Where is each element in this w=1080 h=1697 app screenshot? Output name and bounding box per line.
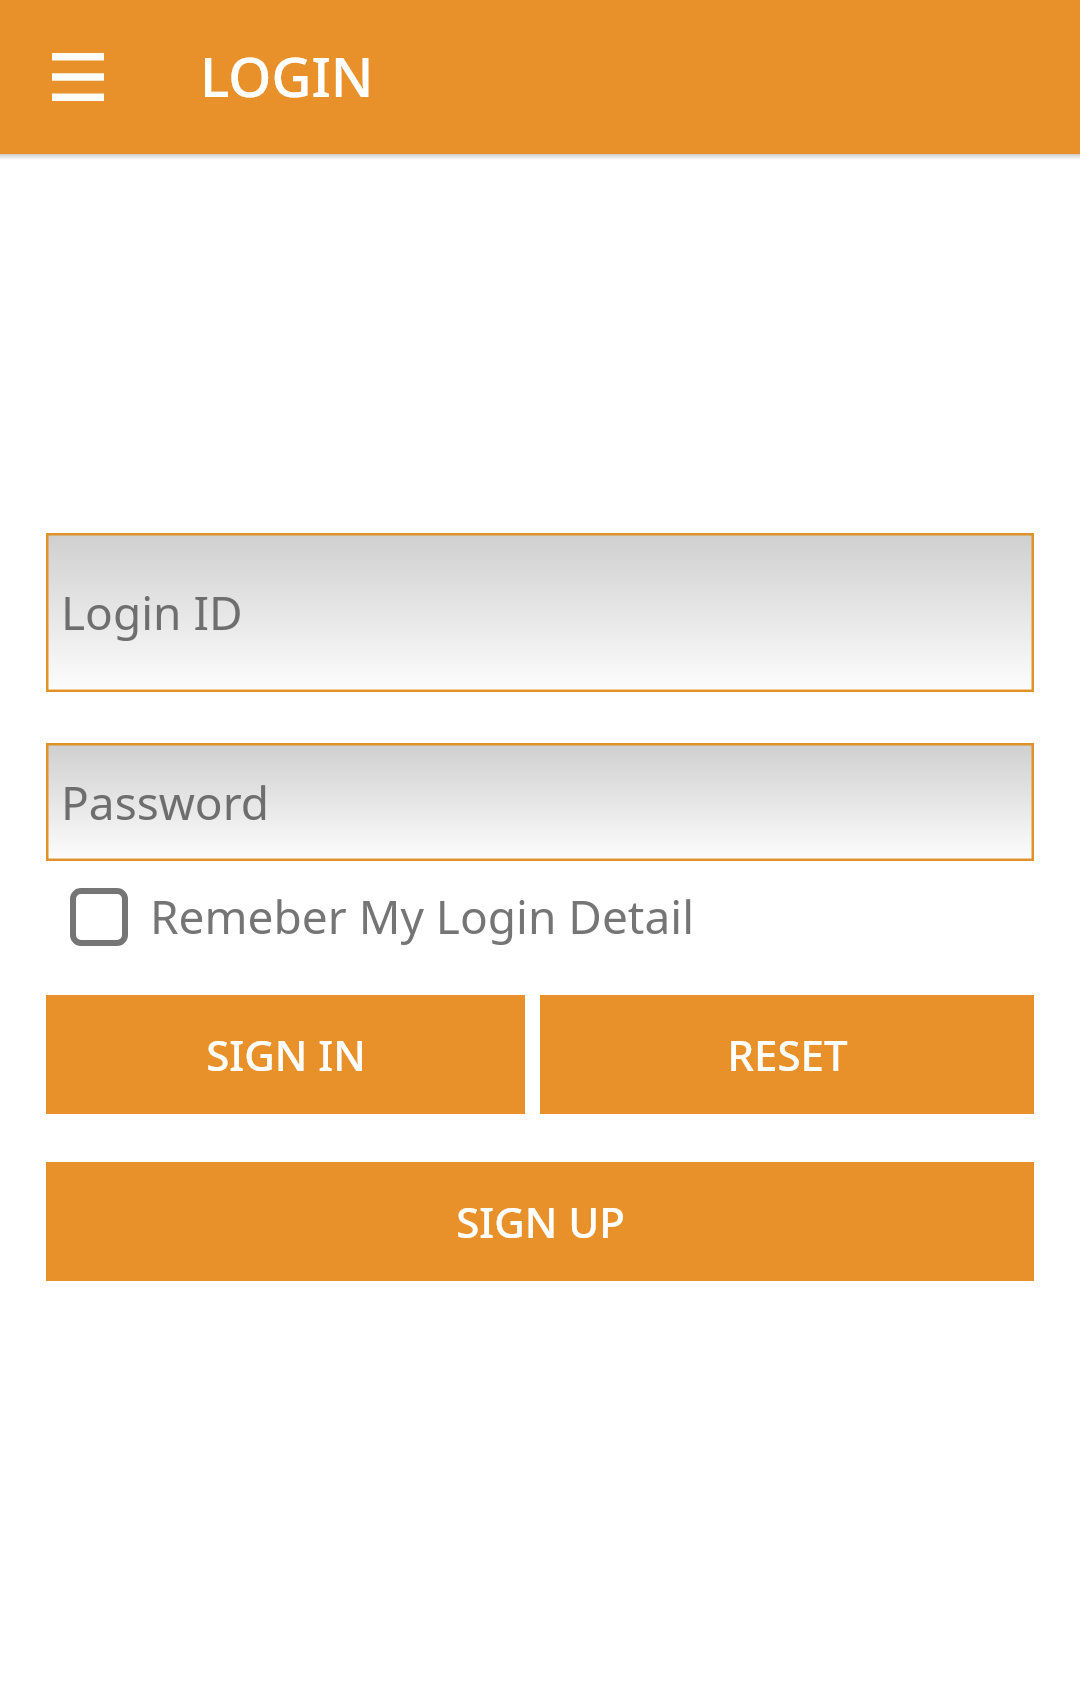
button[interactable]: Password xyxy=(46,743,1034,861)
staticText: RESET xyxy=(727,1026,848,1083)
button[interactable]: Remeber My Login Detail xyxy=(70,885,694,948)
staticText: Login ID xyxy=(61,581,243,644)
button[interactable]: Open navigation menu xyxy=(30,29,126,125)
staticText: SIGN UP xyxy=(456,1193,625,1250)
staticText: Password xyxy=(61,771,270,834)
staticText: SIGN IN xyxy=(206,1026,366,1083)
staticText: Remeber My Login Detail xyxy=(150,885,694,948)
button[interactable]: Login ID xyxy=(46,533,1034,692)
staticText: LOGIN xyxy=(200,38,374,113)
button[interactable]: RESET xyxy=(540,995,1034,1114)
button[interactable]: SIGN UP xyxy=(46,1162,1034,1281)
button[interactable]: SIGN IN xyxy=(46,995,525,1114)
